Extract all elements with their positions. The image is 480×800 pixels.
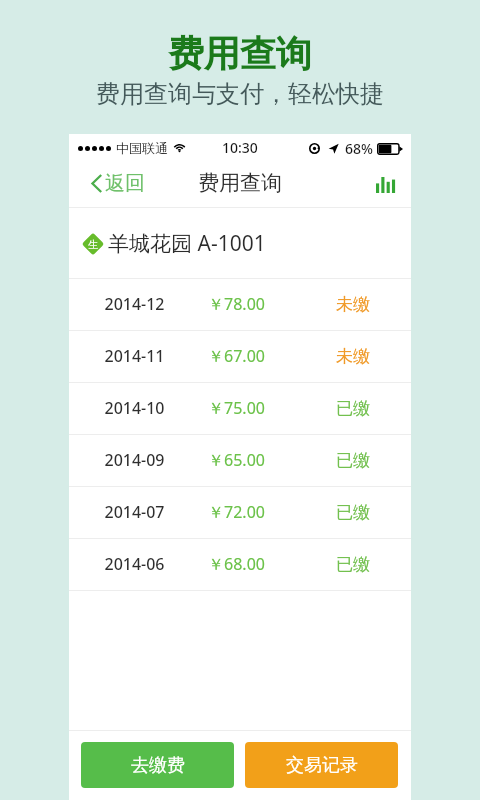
staticText: 羊城花园 A-1001 — [108, 229, 266, 258]
staticText: 2014-07 — [104, 501, 165, 523]
button[interactable]: 2014-12 — [69, 279, 411, 331]
button[interactable]: 2014-11 — [69, 331, 411, 383]
staticText: ￥65.00 — [208, 449, 265, 471]
staticText: 生 — [88, 238, 98, 251]
staticText: ￥72.00 — [208, 501, 265, 523]
staticText: 费用查询与支付，轻松快捷 — [96, 79, 384, 109]
button[interactable]: 去缴费 — [81, 742, 234, 788]
staticText: 已缴 — [336, 450, 370, 471]
button[interactable]: 2014-07 — [69, 487, 411, 539]
staticText: 去缴费 — [131, 754, 185, 777]
button[interactable]: 返回 — [91, 171, 151, 196]
button[interactable]: 统计 — [374, 175, 397, 195]
staticText: 已缴 — [336, 398, 370, 419]
staticText: ￥75.00 — [208, 397, 265, 419]
staticText: 中国联通 — [116, 140, 168, 156]
button[interactable]: 2014-09 — [69, 435, 411, 487]
staticText: 2014-06 — [104, 553, 165, 575]
staticText: 已缴 — [336, 554, 370, 575]
staticText: 返回 — [105, 171, 145, 196]
button[interactable]: 2014-06 — [69, 539, 411, 591]
staticText: ￥78.00 — [208, 293, 265, 315]
staticText: 费用查询 — [198, 170, 282, 196]
staticText: 未缴 — [336, 346, 370, 367]
staticText: 2014-11 — [104, 345, 165, 367]
staticText: ￥67.00 — [208, 345, 265, 367]
button[interactable]: 交易记录 — [245, 742, 398, 788]
staticText: 未缴 — [336, 294, 370, 315]
staticText: 2014-10 — [104, 397, 165, 419]
staticText: 68% — [345, 139, 373, 158]
button[interactable]: 2014-10 — [69, 383, 411, 435]
staticText: 交易记录 — [286, 754, 358, 777]
staticText: 2014-09 — [104, 449, 165, 471]
staticText: 2014-12 — [104, 293, 165, 315]
staticText: 费用查询 — [168, 31, 312, 76]
staticText: 10:30 — [222, 138, 258, 157]
staticText: 已缴 — [336, 502, 370, 523]
staticText: ￥68.00 — [208, 553, 265, 575]
